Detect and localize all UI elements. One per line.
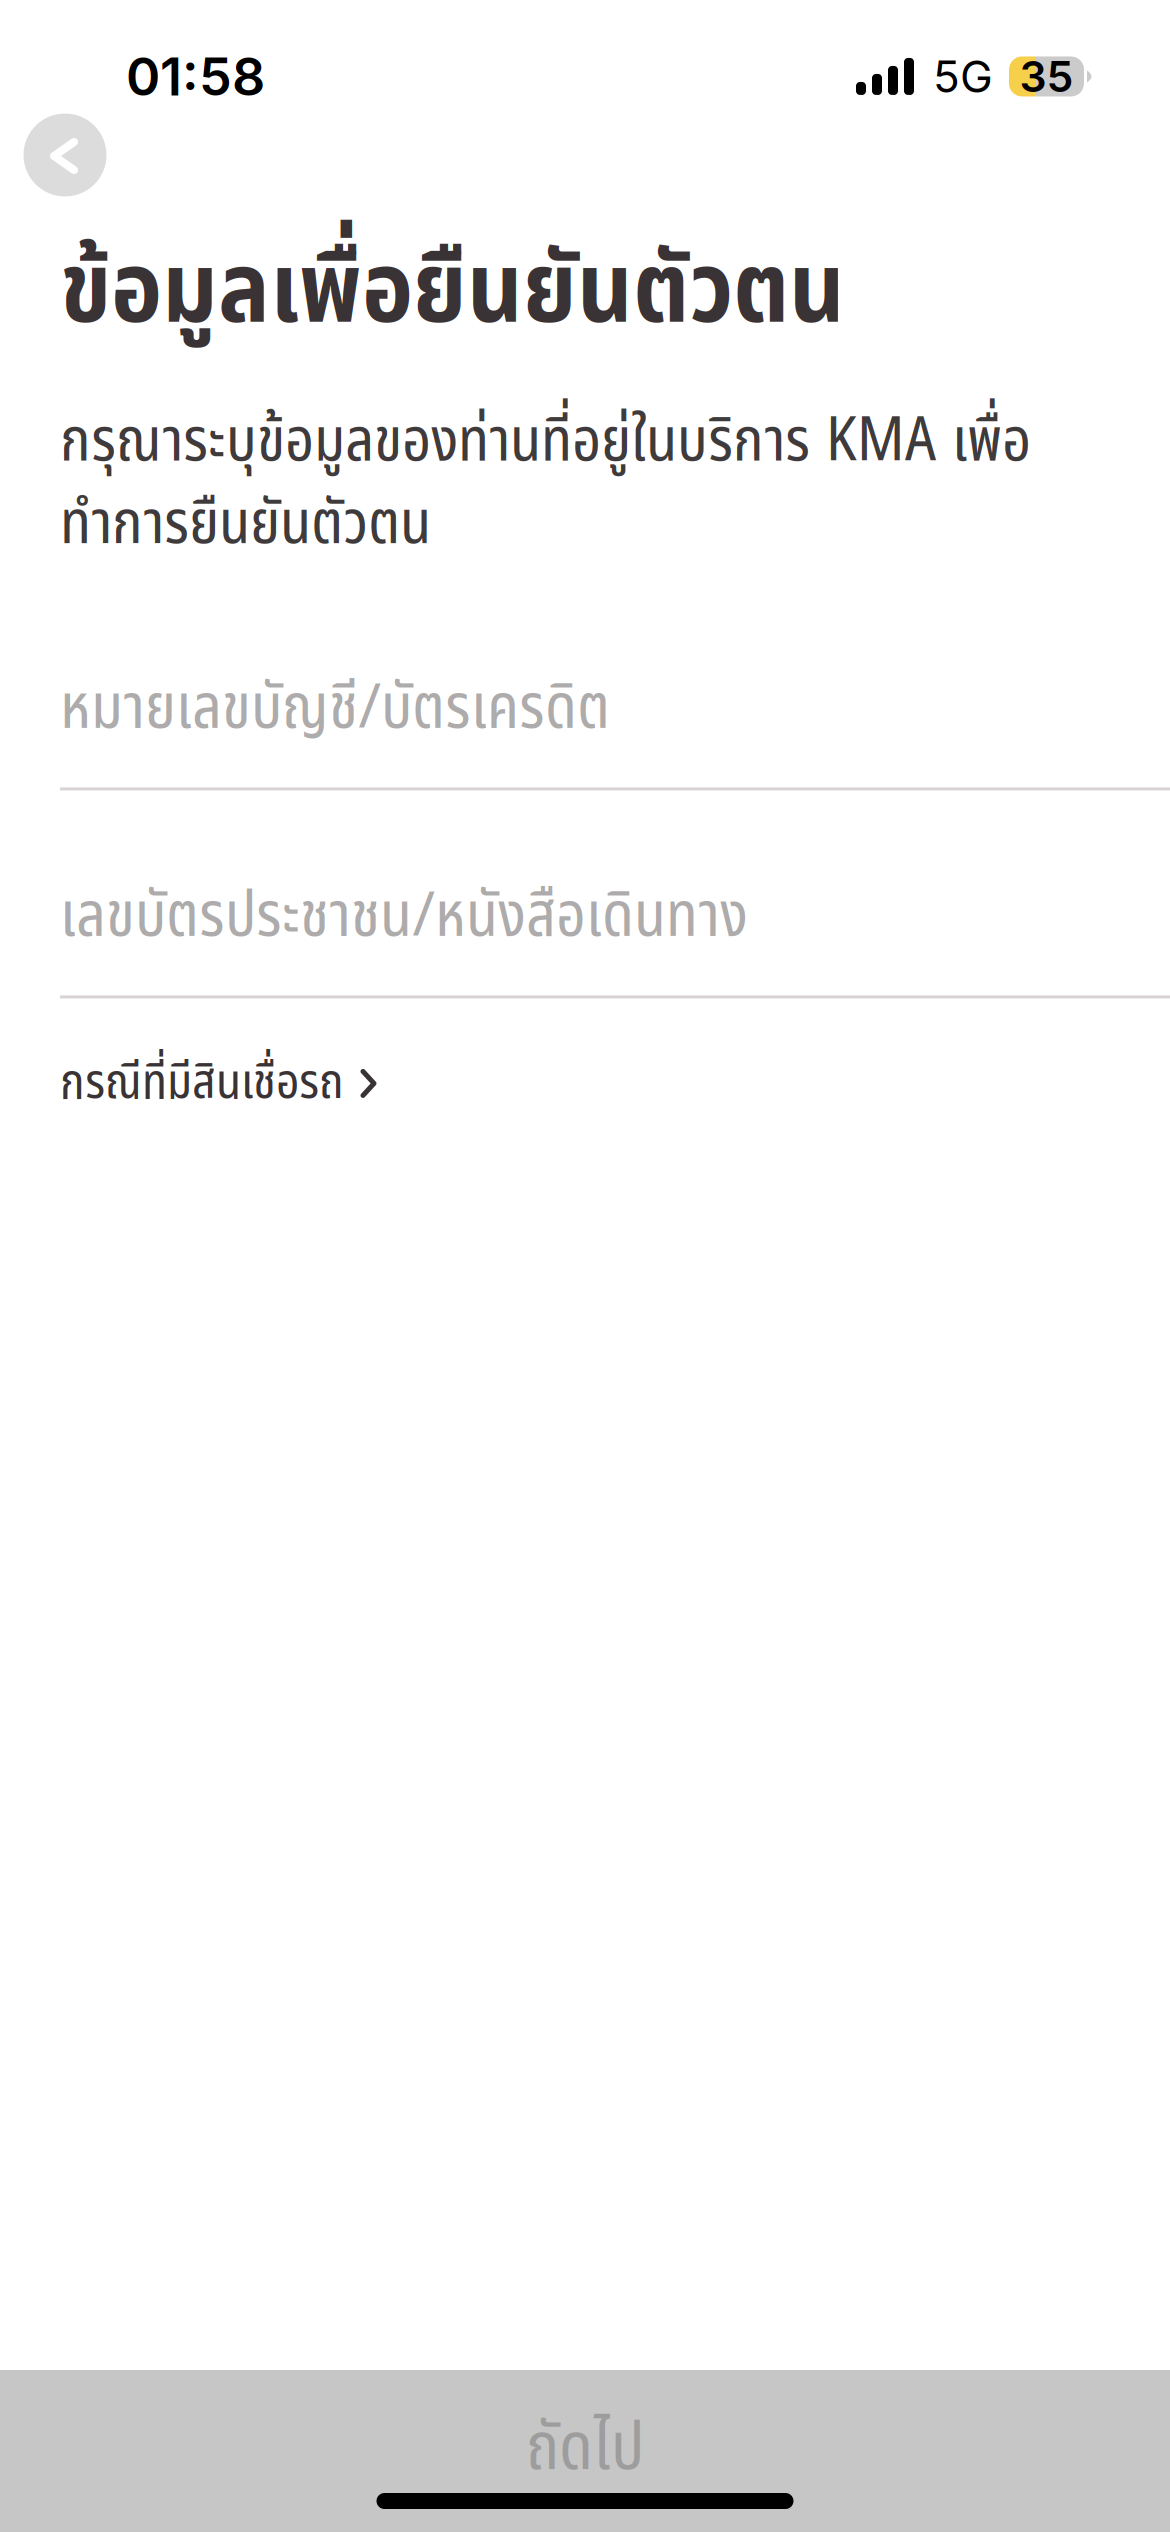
staticText: กรณีที่มีสินเชื่อรถ [60,1046,344,1121]
staticText: หมายเลขบัญชี/บัตรเครดิต [60,661,610,756]
staticText: เลขบัตรประชาชน/หนังสือเดินทาง [60,869,748,964]
staticText: กรุณาระบุข้อมูลของท่านที่อยู่ในบริการ KM… [60,395,1031,570]
button[interactable]: ถัดไป [0,2370,1170,2532]
staticText: 01:58 [126,45,265,108]
staticText: ถัดไป [526,2398,644,2499]
button[interactable]: Back [23,113,107,196]
staticText: 35 [1019,51,1073,102]
button[interactable]: กรณีที่มีสินเชื่อรถ [60,1053,377,1113]
staticText: 5G [933,50,993,103]
staticText: ข้อมูลเพื่อยืนยันตัวตน [60,217,845,366]
